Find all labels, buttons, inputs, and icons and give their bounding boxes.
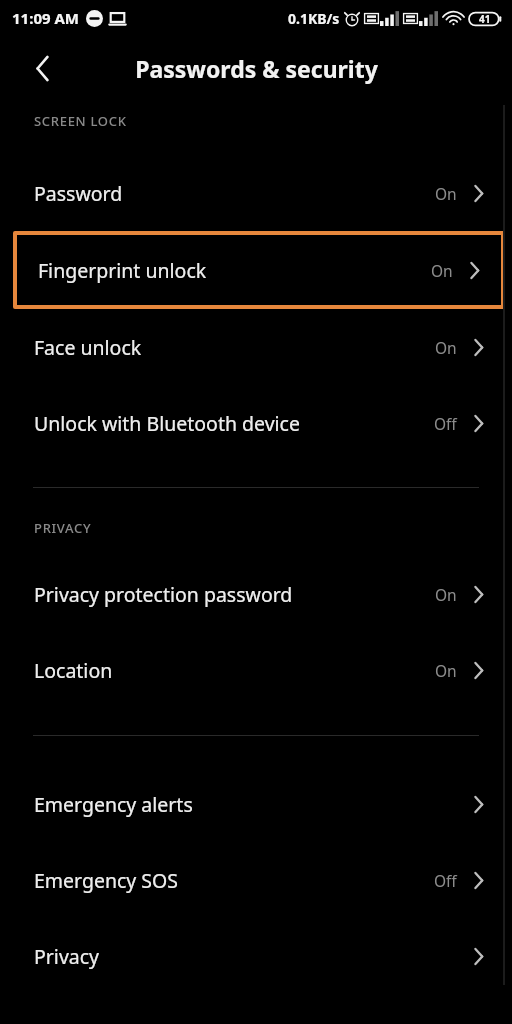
staticText: On xyxy=(435,183,457,204)
staticText: Fingerprint unlock xyxy=(38,257,431,284)
button[interactable]: Face unlock xyxy=(0,309,512,385)
staticText: On xyxy=(435,660,457,681)
staticText: 0.1KB/s xyxy=(288,9,340,28)
button[interactable]: Password xyxy=(0,156,512,231)
staticText: 41 xyxy=(479,12,491,26)
staticText: Emergency SOS xyxy=(34,867,434,894)
staticText: Privacy protection password xyxy=(34,581,435,608)
staticText: Privacy xyxy=(34,943,473,970)
button[interactable]: Fingerprint unlock xyxy=(17,235,501,305)
button[interactable]: Emergency alerts xyxy=(0,766,512,842)
staticText: Off xyxy=(434,870,457,891)
button[interactable]: Back xyxy=(20,45,66,91)
staticText: 11:09 AM xyxy=(12,8,79,28)
staticText: Emergency alerts xyxy=(34,791,473,818)
staticText: SCREEN LOCK xyxy=(34,112,127,130)
button[interactable]: Location xyxy=(0,632,512,708)
button[interactable]: Emergency SOS xyxy=(0,842,512,918)
staticText: Password xyxy=(34,180,435,207)
staticText: Unlock with Bluetooth device xyxy=(34,410,434,437)
staticText: On xyxy=(435,584,457,605)
button[interactable]: Privacy xyxy=(0,918,512,994)
staticText: Passwords & security xyxy=(135,53,378,84)
staticText: PRIVACY xyxy=(34,519,92,537)
button[interactable]: Privacy protection password xyxy=(0,556,512,632)
staticText: Off xyxy=(434,413,457,434)
staticText: On xyxy=(435,337,457,358)
staticText: Face unlock xyxy=(34,334,435,361)
staticText: Location xyxy=(34,657,435,684)
staticText: On xyxy=(431,260,453,281)
button[interactable]: Unlock with Bluetooth device xyxy=(0,385,512,461)
